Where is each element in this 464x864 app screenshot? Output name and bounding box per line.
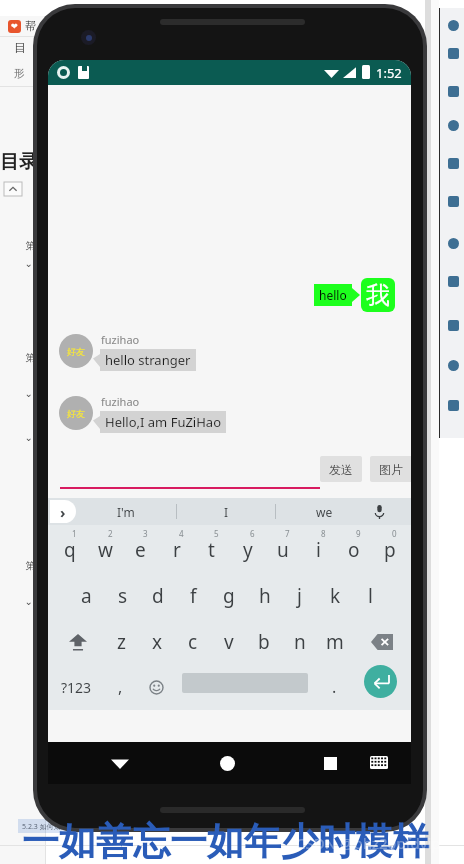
button[interactable]: d (140, 575, 175, 617)
button[interactable]: Voice input (374, 505, 385, 519)
staticText: c (188, 629, 198, 655)
button[interactable]: , (104, 667, 136, 707)
staticText: ⌄ 4. (2, 430, 44, 444)
staticText: 形 (14, 66, 25, 80)
button[interactable]: j (282, 575, 317, 617)
button[interactable]: c (175, 621, 210, 663)
staticText: 5 (214, 528, 219, 539)
button[interactable]: r (159, 529, 194, 571)
staticText: ⌄ 5. (2, 594, 44, 608)
staticText: ⌄ 4. (2, 386, 44, 400)
staticText: b (258, 629, 270, 655)
button[interactable]: p (372, 529, 407, 571)
button[interactable]: n (282, 621, 317, 663)
button[interactable]: Expand suggestions (50, 500, 76, 523)
button[interactable]: i (301, 529, 336, 571)
staticText: CSDN @bhz20pfdvip (296, 833, 441, 853)
staticText: 6 (250, 528, 255, 539)
staticText: 第 4 (2, 350, 44, 364)
staticText: l (368, 583, 373, 609)
staticText: 4. (2, 368, 44, 382)
staticText: 3. (2, 332, 44, 346)
button[interactable]: Back (111, 755, 129, 773)
staticText: a (81, 583, 92, 609)
staticText: ⌄ 3. (2, 256, 44, 270)
staticText: hello (319, 287, 347, 303)
button[interactable]: e (123, 529, 158, 571)
staticText: 3. (2, 296, 44, 310)
staticText: o (348, 537, 360, 563)
staticText: 发送 (329, 462, 353, 477)
staticText: n (294, 629, 306, 655)
button[interactable]: y (230, 529, 265, 571)
staticText: 目录 (0, 150, 38, 174)
button[interactable]: a (69, 575, 104, 617)
staticText: w (98, 537, 113, 563)
staticText: 好友 (67, 408, 85, 419)
staticText: x (152, 629, 163, 655)
button[interactable]: g (211, 575, 246, 617)
button[interactable]: b (246, 621, 281, 663)
staticText: 目 (14, 40, 26, 55)
button[interactable]: ?123 (54, 667, 98, 707)
staticText: f (190, 583, 197, 609)
staticText: y (243, 537, 253, 563)
staticText: s (118, 583, 128, 609)
staticText: d (152, 583, 164, 609)
staticText: I (224, 504, 229, 520)
staticText: p (384, 537, 396, 563)
staticText: 第 3 (2, 238, 44, 252)
button[interactable]: v (211, 621, 246, 663)
staticText: 2 (108, 528, 113, 539)
staticText: , (118, 676, 123, 698)
staticText: 0 (392, 528, 397, 539)
staticText: 第 5 (2, 558, 44, 572)
button[interactable]: h (247, 575, 282, 617)
button[interactable]: . (318, 667, 350, 707)
button[interactable]: 图片 (370, 456, 411, 482)
button[interactable]: k (318, 575, 353, 617)
staticText: 8 (321, 528, 326, 539)
staticText: r (173, 537, 181, 563)
button[interactable]: Shift (60, 621, 96, 663)
button[interactable]: Hide keyboard (370, 756, 388, 769)
staticText: fuzihao (101, 332, 140, 347)
staticText: 我 (366, 280, 390, 310)
staticText: t (208, 537, 215, 563)
staticText: e (135, 537, 146, 563)
button[interactable]: 发送 (320, 456, 362, 482)
staticText: i (316, 537, 321, 563)
staticText: hello stranger (105, 351, 191, 369)
staticText: 1 (72, 528, 77, 539)
button[interactable]: x (140, 621, 175, 663)
staticText: . (332, 676, 337, 698)
button[interactable]: we (298, 498, 350, 525)
staticText: I'm (117, 504, 135, 520)
staticText: Hello,I am FuZiHao (105, 413, 221, 431)
staticText: u (277, 537, 289, 563)
button[interactable]: m (317, 621, 352, 663)
button[interactable]: t (194, 529, 229, 571)
button[interactable]: q (52, 529, 87, 571)
button[interactable]: Enter (364, 665, 397, 698)
button[interactable]: Home (220, 756, 235, 771)
staticText: 7 (285, 528, 290, 539)
button[interactable]: Emoji (140, 667, 172, 707)
button[interactable]: l (353, 575, 388, 617)
button[interactable]: s (105, 575, 140, 617)
button[interactable]: u (265, 529, 300, 571)
button[interactable]: I'm (100, 498, 152, 525)
staticText: v (224, 629, 234, 655)
button[interactable]: Backspace (362, 621, 402, 663)
staticText: › (60, 502, 66, 522)
staticText: fuzihao (101, 394, 140, 409)
staticText: 4. (2, 540, 44, 554)
button[interactable]: I (200, 498, 252, 525)
button[interactable]: w (88, 529, 123, 571)
button[interactable]: z (104, 621, 139, 663)
button[interactable]: o (336, 529, 371, 571)
button[interactable]: f (176, 575, 211, 617)
staticText: 帮 (25, 19, 36, 33)
